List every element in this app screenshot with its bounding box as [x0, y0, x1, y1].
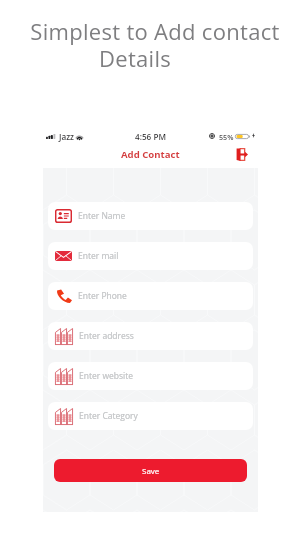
staticText: Enter Category — [79, 410, 138, 422]
staticText: Enter Name — [78, 210, 126, 222]
button[interactable]: Enter Phone — [48, 282, 253, 310]
staticText: Add Contact — [121, 148, 180, 161]
button[interactable]: Enter Category — [48, 402, 253, 430]
button[interactable]: Save — [54, 459, 247, 482]
staticText: 4:56 PM — [135, 131, 166, 142]
button[interactable]: Enter mail — [48, 242, 253, 270]
staticText: 55% — [219, 132, 234, 142]
button[interactable]: Enter address — [48, 322, 253, 350]
button[interactable]: Logout — [233, 145, 251, 164]
staticText: Simplest to Add contact — [5, 16, 300, 46]
staticText: Enter mail — [78, 250, 119, 262]
staticText: Enter Phone — [78, 290, 127, 302]
staticText: Jazz — [59, 131, 75, 142]
staticText: Enter address — [79, 330, 134, 342]
staticText: Enter website — [79, 370, 133, 382]
button[interactable]: Enter website — [48, 362, 253, 390]
button[interactable]: Enter Name — [48, 202, 253, 230]
staticText: Save — [142, 465, 160, 476]
staticText: Details — [0, 43, 285, 73]
